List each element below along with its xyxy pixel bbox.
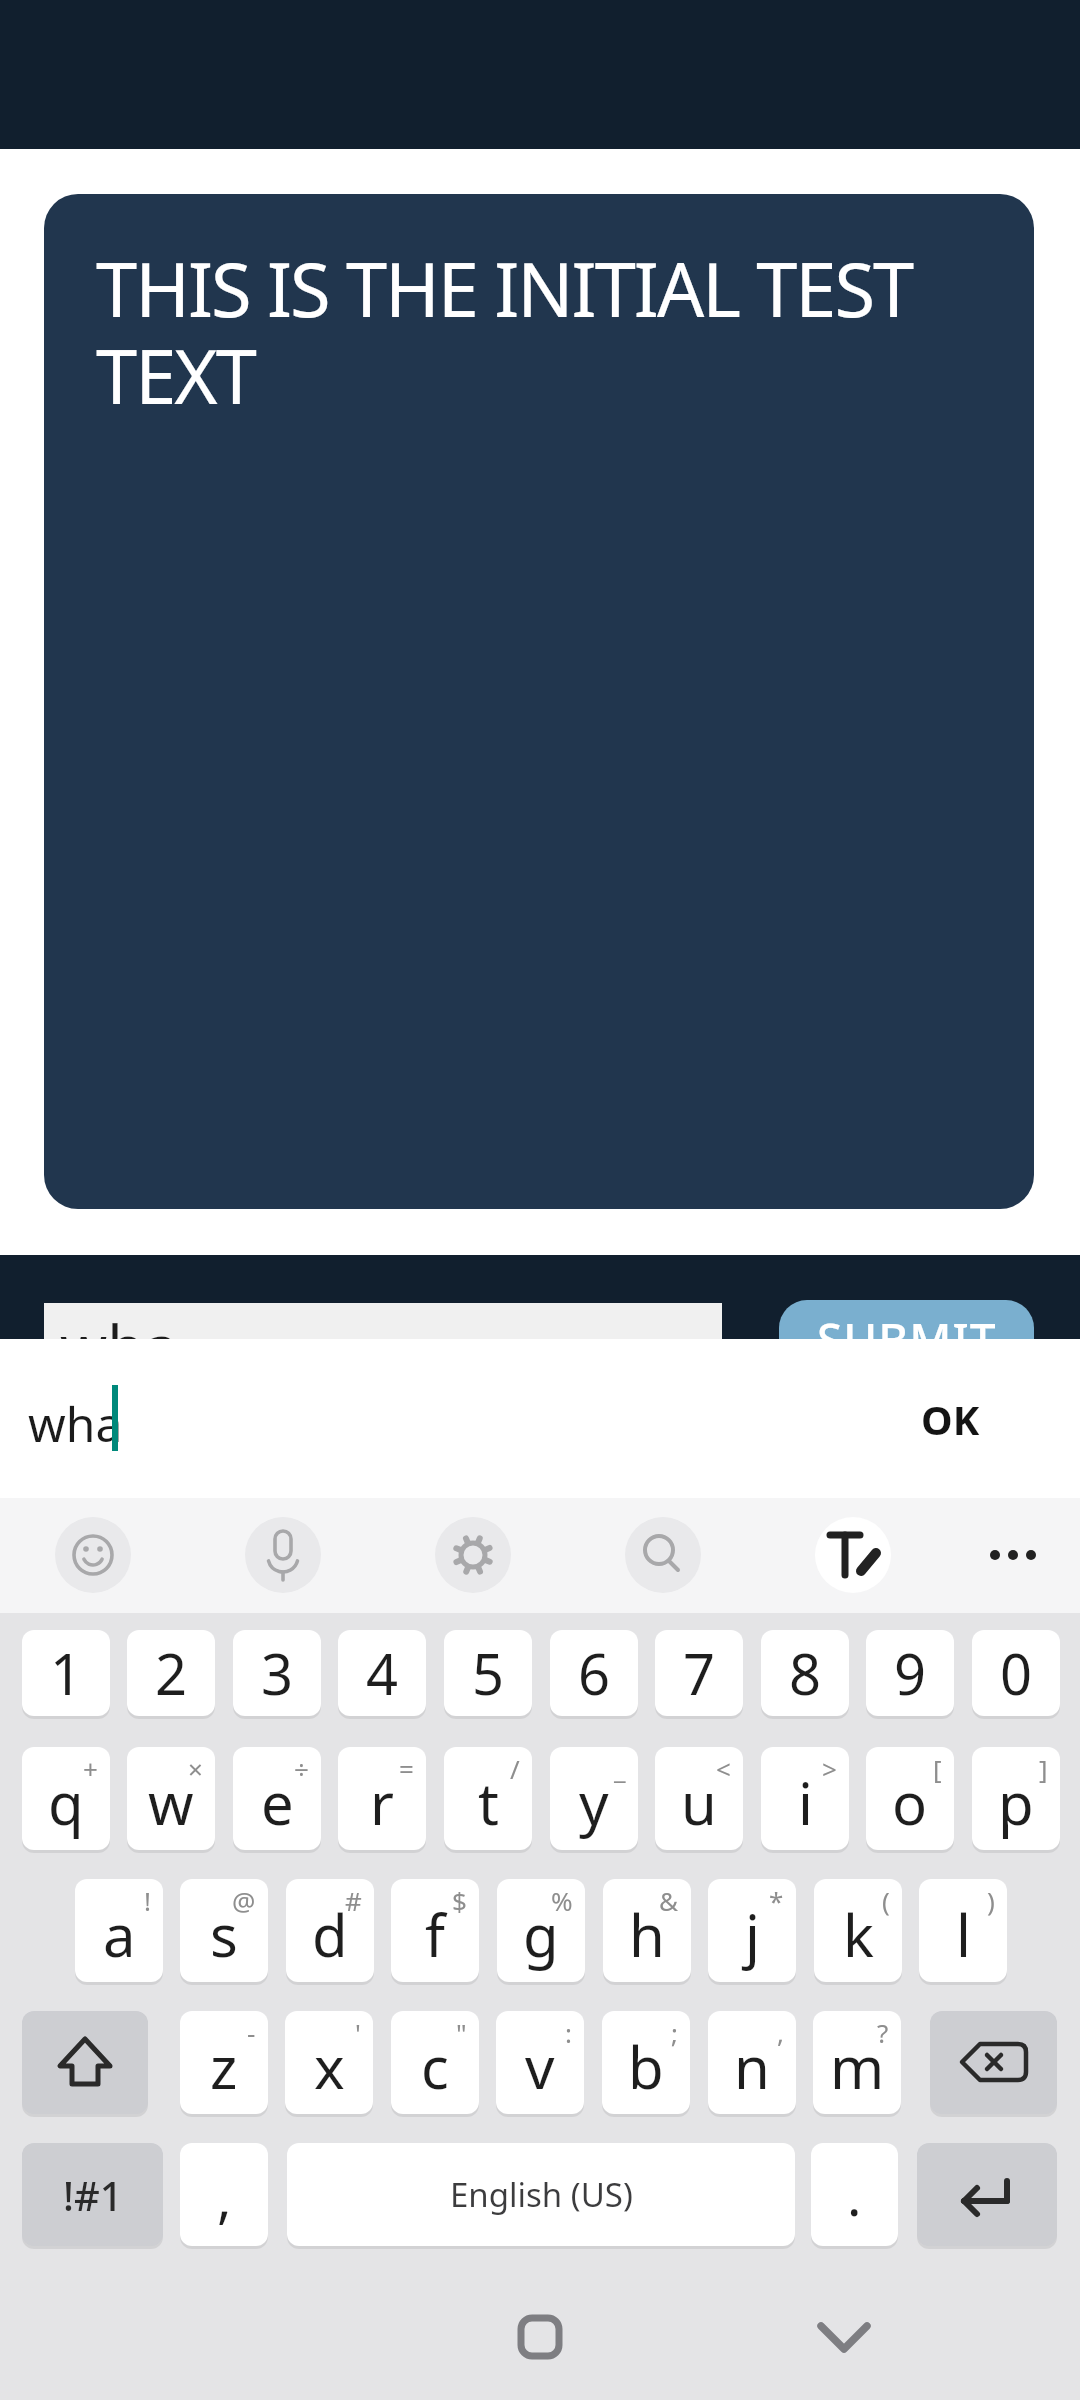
- staticText: e: [261, 1763, 294, 1842]
- staticText: p: [998, 1763, 1034, 1842]
- staticText: y: [579, 1763, 609, 1842]
- staticText: l: [956, 1895, 971, 1974]
- staticText: THIS IS THE INITIAL TEST TEXT: [96, 238, 913, 426]
- staticText: ,: [217, 2160, 232, 2234]
- button[interactable]: [930, 2011, 1057, 2114]
- button[interactable]: s: [180, 1879, 268, 1982]
- button[interactable]: d: [286, 1879, 374, 1982]
- staticText: 1: [50, 1635, 83, 1711]
- button[interactable]: 0: [972, 1630, 1060, 1716]
- staticText: .: [847, 2158, 862, 2232]
- staticText: m: [830, 2027, 885, 2106]
- button[interactable]: 3: [233, 1630, 321, 1716]
- staticText: %: [551, 1883, 573, 1918]
- button[interactable]: q: [22, 1747, 110, 1850]
- staticText: f: [425, 1895, 445, 1974]
- button[interactable]: k: [814, 1879, 902, 1982]
- staticText: ;: [671, 2015, 678, 2050]
- staticText: &: [659, 1883, 679, 1918]
- staticText: s: [210, 1895, 238, 1974]
- button[interactable]: ,: [180, 2143, 268, 2246]
- staticText: !#1: [63, 2168, 123, 2222]
- button[interactable]: n: [708, 2011, 796, 2114]
- staticText: 2: [155, 1635, 188, 1711]
- button[interactable]: wha: [44, 1303, 722, 1413]
- button[interactable]: i: [761, 1747, 849, 1850]
- button[interactable]: v: [496, 2011, 584, 2114]
- staticText: [: [933, 1751, 942, 1786]
- staticText: wha: [60, 1305, 178, 1387]
- staticText: +: [83, 1751, 98, 1786]
- staticText: u: [681, 1763, 717, 1842]
- staticText: SUBMIT: [817, 1308, 997, 1371]
- button[interactable]: 2: [127, 1630, 215, 1716]
- button[interactable]: 9: [866, 1630, 954, 1716]
- staticText: OK: [921, 1392, 980, 1446]
- staticText: 3: [261, 1635, 294, 1711]
- staticText: 7: [683, 1635, 716, 1711]
- staticText: ): [987, 1883, 995, 1918]
- button[interactable]: 6: [550, 1630, 638, 1716]
- staticText: j: [745, 1895, 760, 1974]
- staticText: !: [144, 1883, 151, 1918]
- button[interactable]: y: [550, 1747, 638, 1850]
- staticText: h: [629, 1895, 665, 1974]
- button[interactable]: u: [655, 1747, 743, 1850]
- staticText: 0: [1000, 1635, 1033, 1711]
- button[interactable]: c: [391, 2011, 479, 2114]
- staticText: x: [314, 2027, 345, 2106]
- button[interactable]: [917, 2143, 1057, 2246]
- button[interactable]: 8: [761, 1630, 849, 1716]
- staticText: d: [312, 1895, 348, 1974]
- button[interactable]: r: [338, 1747, 426, 1850]
- staticText: k: [843, 1895, 874, 1974]
- staticText: wha: [28, 1391, 123, 1456]
- button[interactable]: 4: [338, 1630, 426, 1716]
- staticText: ,: [777, 2015, 784, 2050]
- staticText: _: [614, 1751, 626, 1786]
- button[interactable]: SUBMIT: [779, 1300, 1034, 1420]
- staticText: ": [456, 2015, 467, 2050]
- button[interactable]: p: [972, 1747, 1060, 1850]
- button[interactable]: 7: [655, 1630, 743, 1716]
- staticText: @: [232, 1883, 256, 1918]
- staticText: #: [345, 1883, 362, 1918]
- staticText: 4: [366, 1635, 399, 1711]
- button[interactable]: 5: [444, 1630, 532, 1716]
- button[interactable]: j: [708, 1879, 796, 1982]
- staticText: 5: [472, 1635, 505, 1711]
- button[interactable]: g: [497, 1879, 585, 1982]
- staticText: ?: [877, 2015, 889, 2050]
- button[interactable]: !#1: [22, 2143, 163, 2246]
- button[interactable]: w: [127, 1747, 215, 1850]
- button[interactable]: .: [811, 2143, 898, 2246]
- button[interactable]: t: [444, 1747, 532, 1850]
- button[interactable]: 1: [22, 1630, 110, 1716]
- button[interactable]: x: [285, 2011, 373, 2114]
- staticText: <: [716, 1751, 731, 1786]
- staticText: o: [892, 1763, 928, 1842]
- button[interactable]: OK: [895, 1369, 1005, 1469]
- button[interactable]: [22, 2011, 148, 2114]
- staticText: English (US): [450, 2172, 633, 2217]
- staticText: ×: [188, 1751, 203, 1786]
- staticText: r: [370, 1763, 394, 1842]
- button[interactable]: z: [180, 2011, 268, 2114]
- button[interactable]: f: [391, 1879, 479, 1982]
- button[interactable]: b: [602, 2011, 690, 2114]
- button[interactable]: l: [919, 1879, 1007, 1982]
- staticText: ': [355, 2015, 361, 2050]
- staticText: ÷: [294, 1751, 309, 1786]
- button[interactable]: o: [866, 1747, 954, 1850]
- button[interactable]: e: [233, 1747, 321, 1850]
- staticText: =: [399, 1751, 414, 1786]
- button[interactable]: h: [603, 1879, 691, 1982]
- staticText: z: [210, 2027, 238, 2106]
- staticText: n: [734, 2027, 770, 2106]
- staticText: $: [452, 1883, 467, 1918]
- button[interactable]: a: [75, 1879, 163, 1982]
- staticText: c: [421, 2027, 449, 2106]
- button[interactable]: THIS IS THE INITIAL TEST TEXT: [44, 194, 1034, 1209]
- button[interactable]: m: [813, 2011, 901, 2114]
- button[interactable]: English (US): [287, 2143, 795, 2246]
